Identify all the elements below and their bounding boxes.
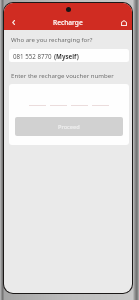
button[interactable]: 081 552 8770 <box>9 49 129 62</box>
staticText: (Myself) <box>54 52 79 60</box>
staticText: Enter the recharge voucher number <box>11 71 114 79</box>
staticText: Recharge <box>53 18 83 27</box>
staticText: 081 552 8770 <box>13 52 54 60</box>
staticText: Who are you recharging for? <box>11 35 93 43</box>
button[interactable]: Home <box>117 16 131 30</box>
button[interactable]: Proceed <box>15 117 123 136</box>
button[interactable]: Back <box>7 16 21 30</box>
staticText: Proceed <box>58 123 80 131</box>
